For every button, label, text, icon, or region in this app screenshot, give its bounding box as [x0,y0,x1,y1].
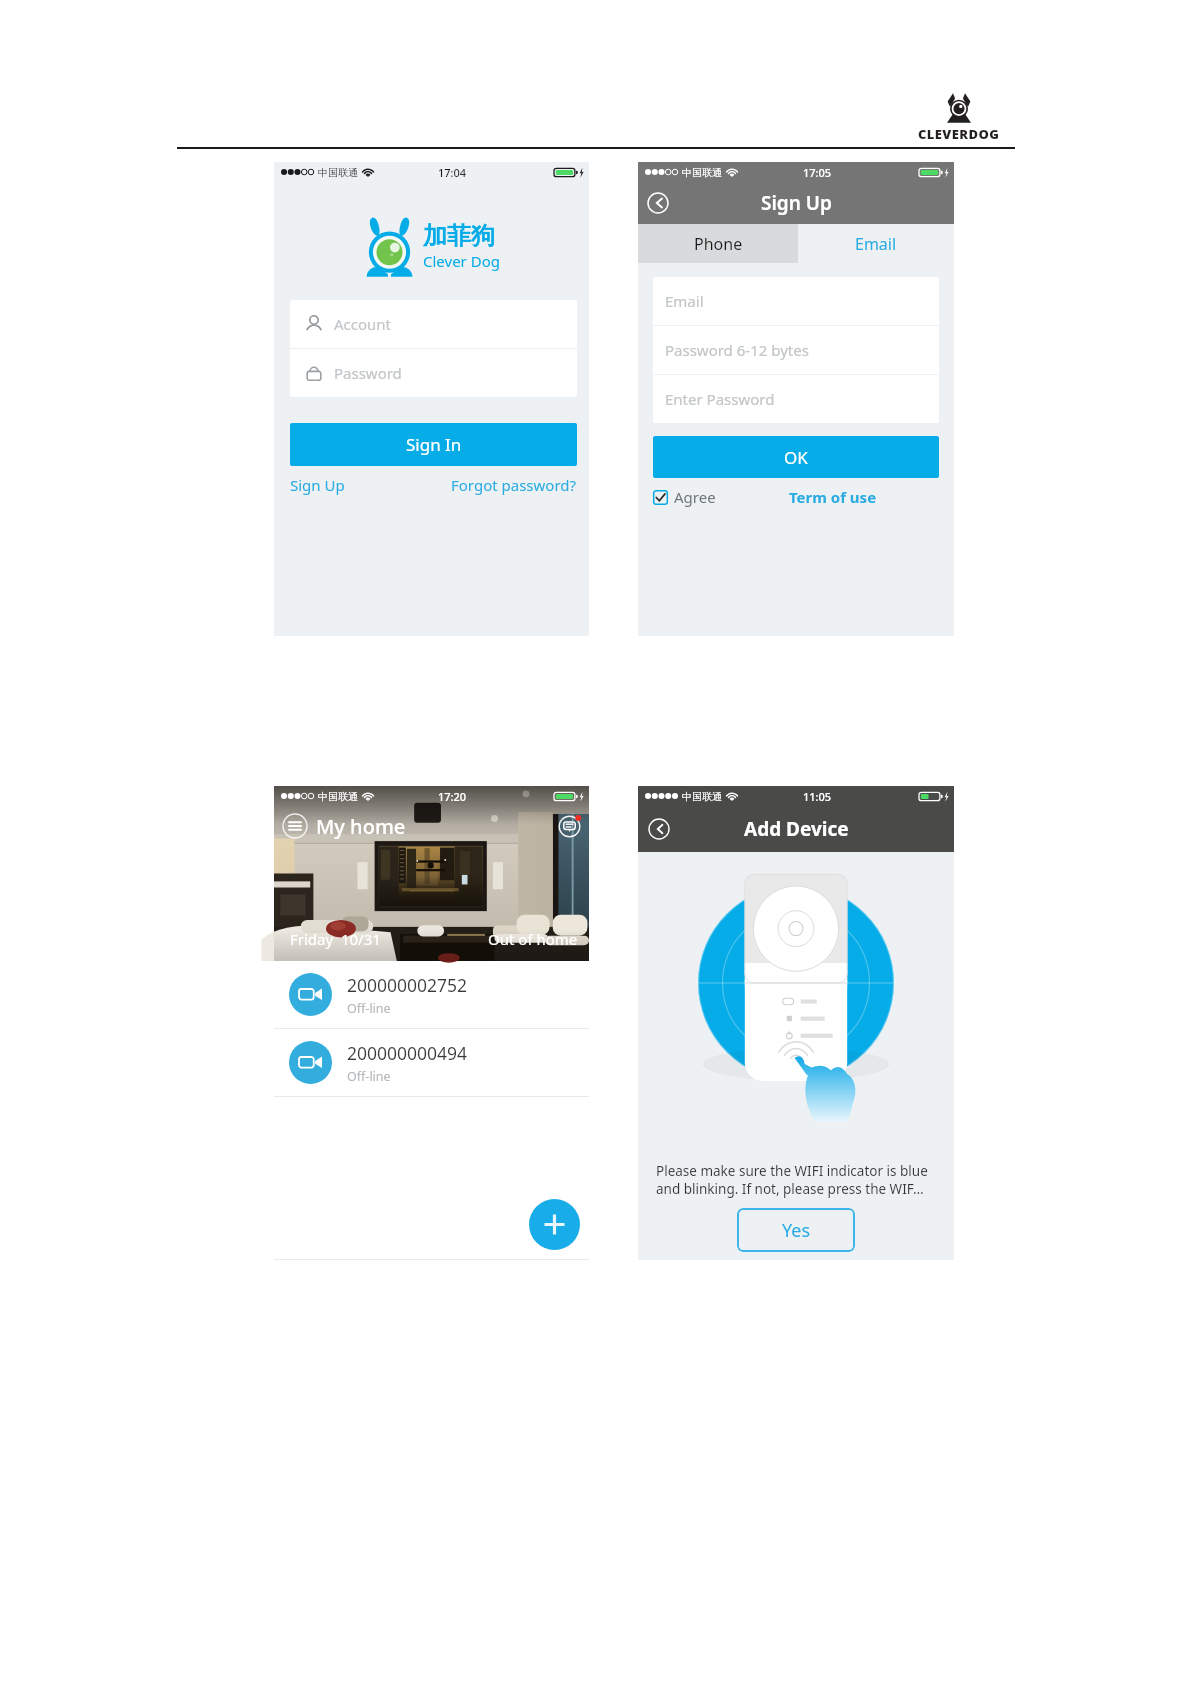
button[interactable]: Agree [653,487,716,507]
staticText: Agree [674,487,716,507]
button[interactable]: OK [653,436,939,478]
staticText: Please make sure the WIFI indicator is b… [656,1162,928,1180]
staticText: Password 6-12 bytes [665,340,809,360]
staticText: Sign Up [290,475,345,495]
button[interactable]: Password [290,349,577,397]
button[interactable]: 200000002752 [274,961,589,1028]
staticText: Term of use [789,487,877,507]
staticText: My home [316,813,406,840]
button[interactable]: Term of use [789,487,877,507]
staticText: Yes [782,1218,811,1243]
staticText: 加菲狗 [423,221,495,251]
staticText: OK [784,446,808,469]
button[interactable]: Yes [737,1208,855,1252]
button[interactable]: Sign In [290,423,577,466]
staticText: 17:04 [438,165,467,180]
button[interactable]: Sign Up [290,475,345,495]
staticText: 17:05 [803,165,832,180]
button[interactable]: Account [290,300,577,348]
staticText: Enter Password [665,389,775,409]
button[interactable]: Enter Password [653,375,939,423]
staticText: Phone [694,233,743,255]
staticText: Clever Dog [423,251,500,271]
staticText: Email [855,233,897,255]
staticText: CLEVERDOG [918,125,1000,143]
button[interactable]: Email [798,224,954,263]
staticText: Forgot password? [451,475,577,495]
staticText: Password [334,363,402,383]
button[interactable]: Forgot password? [451,475,577,495]
staticText: 17:20 [438,789,467,804]
staticText: 200000002752 [347,973,468,997]
button[interactable]: Back [648,818,670,840]
staticText: and blinking. If not, please press the W… [656,1180,924,1198]
staticText: Off-line [347,1068,391,1085]
staticText: Add Device [744,816,849,842]
staticText: Friday 10/31 [290,929,381,949]
staticText: Account [334,314,392,334]
staticText: 中国联通 [682,166,722,179]
button[interactable]: Back [647,192,669,214]
staticText: Email [665,291,704,311]
button[interactable]: Add device [529,1199,580,1250]
staticText: 中国联通 [318,790,358,803]
staticText: 中国联通 [318,166,358,179]
button[interactable]: Email [653,277,939,325]
staticText: 中国联通 [682,790,722,803]
staticText: 200000000494 [347,1041,468,1065]
button[interactable]: Password 6-12 bytes [653,326,939,374]
staticText: Out of home [488,929,578,949]
staticText: Sign In [406,433,462,456]
button[interactable]: Menu [282,813,308,839]
staticText: Off-line [347,1000,391,1017]
staticText: Sign Up [761,190,832,216]
button[interactable]: Messages [558,815,581,838]
button[interactable]: 200000000494 [274,1029,589,1096]
staticText: 11:05 [803,789,832,804]
button[interactable]: Phone [638,224,798,263]
